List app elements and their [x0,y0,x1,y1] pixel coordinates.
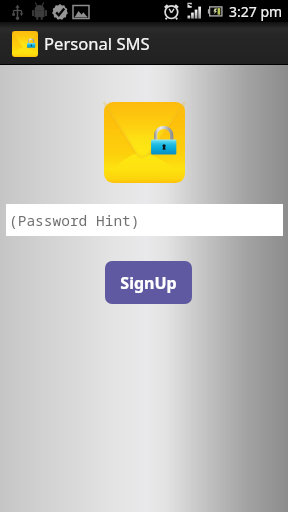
staticText: (Password Hint) [9,210,140,230]
staticText: 3:27 pm [229,2,283,21]
staticText: SignUp [120,272,177,294]
button[interactable]: SignUp [105,261,192,304]
button[interactable]: (Password Hint) [6,204,283,236]
staticText: Personal SMS [44,32,150,55]
